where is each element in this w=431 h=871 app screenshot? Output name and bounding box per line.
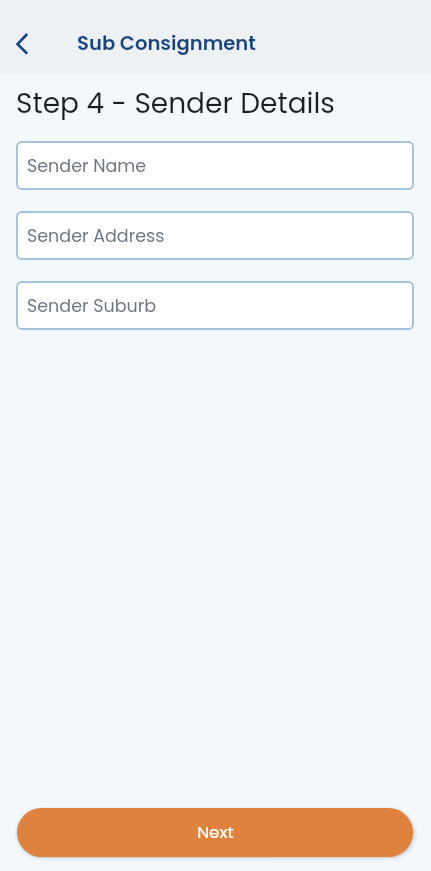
staticText: Step 4 - Sender Details <box>16 84 335 123</box>
staticText: Sender Name <box>27 154 147 179</box>
button[interactable]: Sender Name <box>16 141 414 190</box>
staticText: Sub Consignment <box>77 29 256 56</box>
staticText: Sender Suburb <box>27 294 157 319</box>
staticText: Sender Address <box>27 224 165 249</box>
button[interactable]: Sender Suburb <box>16 281 414 330</box>
staticText: Next <box>197 820 234 844</box>
button[interactable]: Sender Address <box>16 211 414 260</box>
button[interactable]: Next <box>17 808 413 857</box>
button[interactable]: Back <box>5 25 39 59</box>
